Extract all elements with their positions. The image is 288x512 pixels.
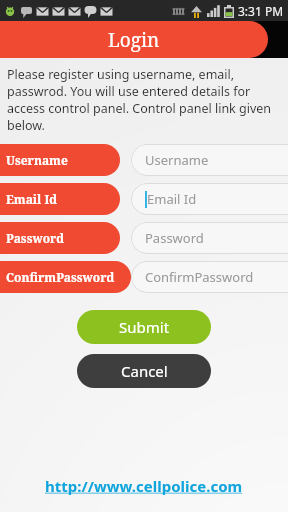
staticText: ConfirmPassword [6,269,115,285]
button[interactable]: Username [0,144,120,176]
button[interactable]: ConfirmPassword [0,261,131,293]
staticText: Email Id [147,190,197,208]
button[interactable]: Email Id [131,183,288,215]
staticText: ConfirmPassword [145,268,254,286]
button[interactable]: Username [131,144,288,176]
staticText: Password [6,230,65,246]
button[interactable]: Email Id [0,183,120,215]
button[interactable]: Submit [77,310,211,344]
staticText: Cancel [121,361,168,381]
button[interactable]: Password [131,222,288,254]
staticText: Username [6,152,68,168]
button[interactable]: http://www.cellpolice.com [41,472,247,500]
staticText: Submit [119,317,170,337]
staticText: Login [108,27,160,53]
staticText: Username [145,151,209,169]
staticText: Email Id [6,191,58,207]
button[interactable]: ConfirmPassword [131,261,288,293]
staticText: Password [145,229,204,247]
staticText: Please register using username, email, p… [7,66,272,134]
button[interactable]: Password [0,222,120,254]
staticText: 3:31 PM [238,3,284,19]
button[interactable]: Cancel [77,354,211,388]
